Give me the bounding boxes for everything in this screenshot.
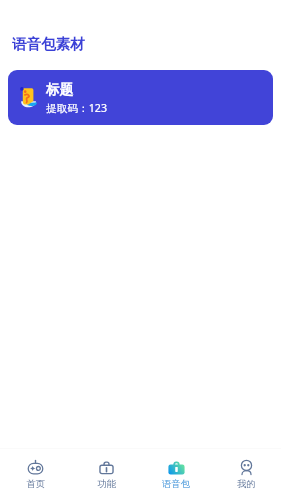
button[interactable]: 首页 [0,449,71,500]
staticText: 提取码：123 [46,101,108,116]
staticText: 标题 [46,81,73,98]
button[interactable]: 语音包 [141,449,211,500]
button[interactable]: 我的 [211,449,281,500]
staticText: 首页 [26,478,45,490]
button[interactable]: 标题 [8,70,273,125]
staticText: 我的 [237,478,256,490]
staticText: 语音包 [162,478,190,490]
button[interactable]: 功能 [71,449,141,500]
other: 语音包 [168,459,185,475]
other: 首页 [27,459,44,475]
other: 我的 [238,459,255,475]
other: 功能 [98,459,115,475]
staticText: 语音包素材 [12,35,85,53]
staticText: 功能 [97,478,116,490]
